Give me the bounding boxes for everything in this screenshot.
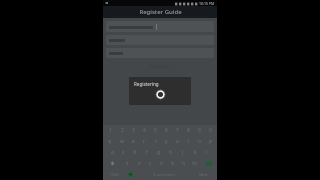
button[interactable] [106, 48, 214, 58]
button[interactable]: p [205, 137, 216, 146]
staticText: x [138, 160, 141, 167]
button[interactable]: 5 [150, 126, 161, 135]
staticText: w [120, 138, 124, 145]
staticText: Sunderland [153, 172, 175, 177]
staticText: 8 [187, 127, 190, 134]
staticText: 5 [154, 127, 157, 134]
button[interactable]: v [156, 159, 167, 168]
button[interactable]: ?123 [104, 170, 124, 179]
button[interactable]: 4 [139, 126, 150, 135]
staticText: 2 [121, 127, 124, 134]
button[interactable]: z [121, 159, 133, 168]
staticText: v [160, 160, 163, 167]
staticText: Register Guide [139, 8, 182, 16]
staticText: d [133, 149, 137, 156]
button[interactable]: e [128, 137, 139, 146]
button[interactable]: t [150, 137, 161, 146]
button[interactable]: 0 [205, 126, 216, 135]
staticText: b [171, 160, 175, 167]
staticText: o [198, 138, 202, 145]
staticText: 0 [209, 127, 212, 134]
button[interactable]: s [118, 148, 129, 157]
staticText: n [182, 160, 186, 167]
staticText: i [188, 138, 190, 145]
button[interactable]: 3 [128, 126, 139, 135]
staticText: y [165, 138, 168, 145]
staticText: 6 [165, 127, 168, 134]
button[interactable]: o [194, 137, 205, 146]
staticText: 4 [143, 127, 146, 134]
staticText: g [157, 149, 161, 156]
staticText: ?123 [110, 172, 119, 177]
staticText: q [108, 138, 112, 145]
button[interactable]: 8 [183, 126, 194, 135]
button[interactable]: q [104, 137, 116, 146]
button[interactable]: 2 [116, 126, 128, 135]
staticText: p [209, 138, 213, 145]
staticText: e [132, 138, 135, 145]
staticText: Next [199, 172, 208, 177]
staticText: c [149, 160, 152, 167]
staticText: r [143, 138, 146, 145]
button[interactable]: Shift [104, 159, 121, 168]
staticText: t [155, 138, 157, 145]
staticText: h [169, 149, 173, 156]
button[interactable]: y [161, 137, 172, 146]
button[interactable]: a [107, 148, 118, 157]
button[interactable]: g [153, 148, 165, 157]
button[interactable]: f [141, 148, 153, 157]
button[interactable]: j [177, 148, 189, 157]
button[interactable]: 7 [172, 126, 183, 135]
staticText: f [146, 149, 148, 156]
staticText: k [194, 149, 197, 156]
button[interactable]: b [167, 159, 178, 168]
button[interactable]: n [178, 159, 189, 168]
button[interactable]: 6 [161, 126, 172, 135]
staticText: 3 [132, 127, 135, 134]
button[interactable]: d [129, 148, 141, 157]
staticText: 7 [176, 127, 179, 134]
button[interactable]: 1 [104, 126, 116, 135]
button[interactable]: u [172, 137, 183, 146]
button[interactable]: x [133, 159, 145, 168]
staticText: z [126, 160, 129, 167]
staticText: j [182, 149, 184, 156]
button[interactable]: m [189, 159, 200, 168]
staticText: 1 [109, 127, 112, 134]
staticText: s [122, 149, 125, 156]
button[interactable]: k [189, 148, 201, 157]
button[interactable] [106, 35, 214, 45]
button[interactable]: Backspace [200, 159, 216, 168]
staticText: Registering [134, 81, 159, 87]
staticText: 10:15 PM [199, 1, 215, 6]
staticText: u [176, 138, 180, 145]
staticText: 9 [198, 127, 201, 134]
button[interactable]: Emoji [124, 170, 136, 179]
button[interactable]: w [116, 137, 128, 146]
button[interactable]: h [165, 148, 177, 157]
button[interactable]: Next [191, 170, 216, 179]
staticText: l [206, 149, 208, 156]
staticText: a [111, 149, 114, 156]
button[interactable] [106, 21, 214, 32]
button[interactable]: 9 [194, 126, 205, 135]
staticText: m [192, 160, 197, 167]
